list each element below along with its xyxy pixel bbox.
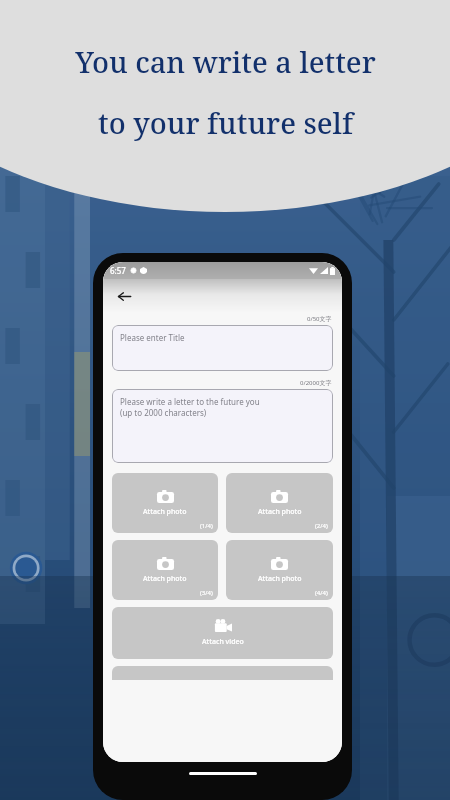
button[interactable]: Attach photo bbox=[112, 473, 218, 533]
staticText: 6:57 bbox=[110, 265, 126, 276]
staticText: (up to 2000 characters) bbox=[120, 407, 207, 418]
staticText: Attach video bbox=[202, 637, 244, 647]
staticText: (4/4) bbox=[315, 589, 328, 597]
staticText: Attach photo bbox=[258, 574, 302, 584]
staticText: Please enter Title bbox=[120, 332, 185, 343]
staticText: Attach photo bbox=[143, 507, 187, 517]
staticText: Attach photo bbox=[258, 507, 302, 517]
staticText: You can write a letter bbox=[75, 42, 376, 81]
button[interactable]: Attach video bbox=[112, 607, 333, 659]
staticText: Attach photo bbox=[143, 574, 187, 584]
button[interactable]: Back bbox=[111, 283, 137, 309]
staticText: to your future self bbox=[98, 103, 353, 142]
staticText: (1/4) bbox=[200, 522, 213, 530]
button[interactable]: Attach photo bbox=[226, 473, 333, 533]
staticText: 0/2000文字 bbox=[300, 379, 332, 387]
staticText: (2/4) bbox=[315, 522, 328, 530]
button[interactable]: Please write a letter to the future you bbox=[112, 389, 333, 463]
button[interactable] bbox=[112, 666, 333, 680]
staticText: Please write a letter to the future you bbox=[120, 396, 260, 407]
button[interactable]: Attach photo bbox=[112, 540, 218, 600]
button[interactable]: Please enter Title bbox=[112, 325, 333, 371]
staticText: (3/4) bbox=[200, 589, 213, 597]
staticText: 0/50文字 bbox=[307, 315, 332, 323]
button[interactable]: Attach photo bbox=[226, 540, 333, 600]
